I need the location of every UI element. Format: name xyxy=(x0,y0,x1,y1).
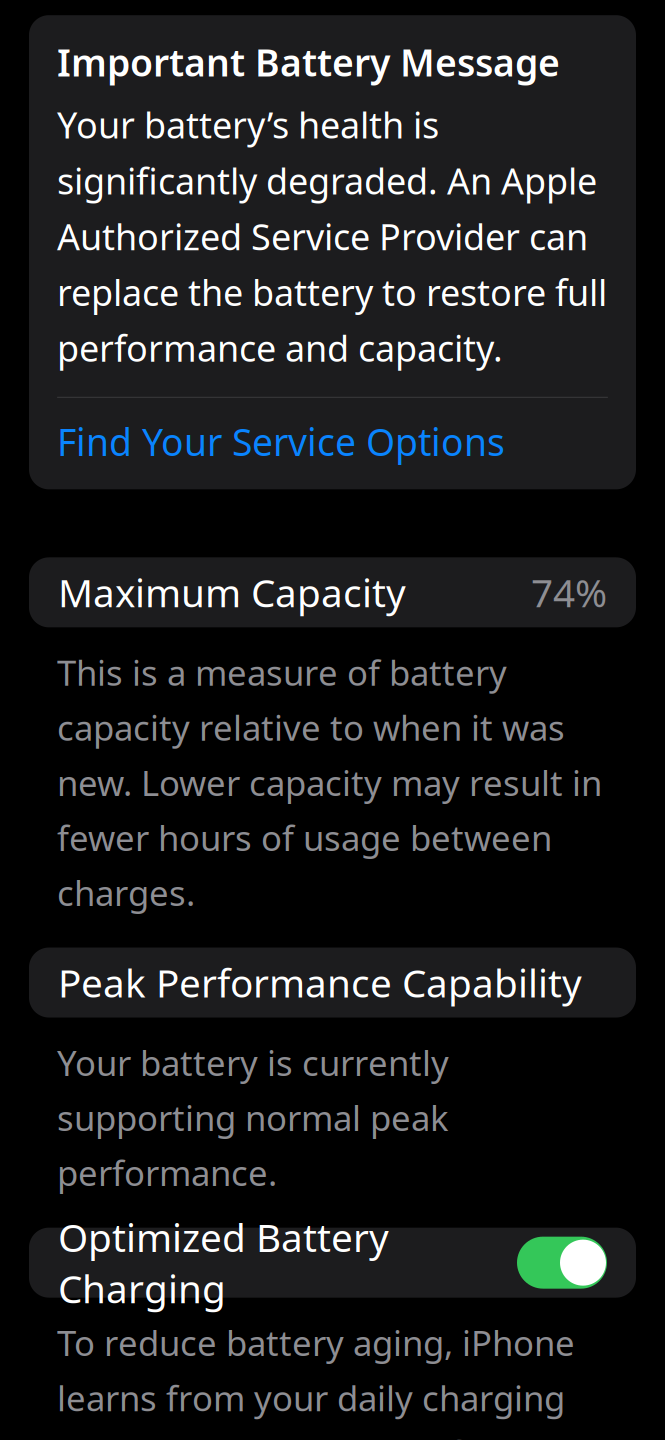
button[interactable]: Optimized Battery Charging xyxy=(517,1237,607,1289)
staticText: To reduce battery aging, iPhone learns f… xyxy=(57,1320,599,1440)
staticText: This is a measure of battery capacity re… xyxy=(57,649,602,916)
staticText: Optimized Battery Charging xyxy=(58,1211,389,1314)
staticText: Your battery is currently supporting nor… xyxy=(57,1039,449,1196)
staticText: 74% xyxy=(531,567,607,618)
staticText: Peak Performance Capability xyxy=(58,957,582,1008)
button[interactable]: Find Your Service Options xyxy=(57,398,608,485)
staticText: Your battery’s health is significantly d… xyxy=(57,101,607,372)
staticText: Find Your Service Options xyxy=(57,417,505,466)
staticText: Important Battery Message xyxy=(57,37,560,87)
staticText: Maximum Capacity xyxy=(58,567,406,618)
